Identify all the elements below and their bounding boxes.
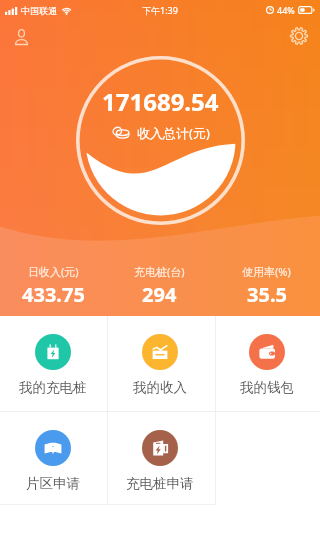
staticText: 收入总计(元)	[137, 124, 210, 142]
staticText: 433.75	[22, 281, 85, 308]
staticText: 充电桩(台)	[134, 264, 185, 279]
button[interactable]: 我的钱包	[213, 316, 320, 411]
staticText: 日收入(元)	[28, 264, 79, 279]
button[interactable]: 片区申请	[0, 412, 106, 505]
staticText: 35.5	[247, 281, 287, 308]
button[interactable]: Settings	[280, 17, 318, 55]
staticText: 我的充电桩	[19, 379, 87, 396]
staticText: 片区申请	[26, 475, 80, 492]
staticText: 充电桩申请	[126, 475, 194, 492]
staticText: 44%	[277, 4, 295, 16]
button[interactable]: Profile	[2, 18, 40, 56]
button[interactable]: 充电桩申请	[106, 412, 213, 505]
staticText: 171689.54	[102, 85, 219, 118]
staticText: 我的收入	[133, 379, 187, 396]
staticText: 使用率(%)	[242, 264, 291, 279]
staticText: 我的钱包	[240, 379, 294, 396]
staticText: 中国联通	[21, 5, 57, 16]
button[interactable]: 我的充电桩	[0, 316, 106, 411]
staticText: 294	[142, 281, 177, 308]
button[interactable]: 我的收入	[106, 316, 213, 411]
staticText: 下午1:39	[142, 4, 178, 16]
